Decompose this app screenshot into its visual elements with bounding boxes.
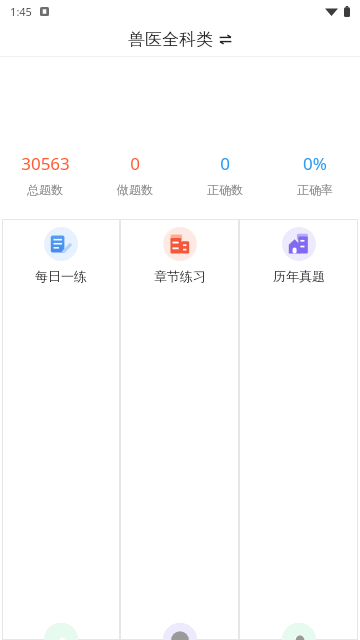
- staticText: 1:45: [10, 4, 32, 19]
- staticText: 30563: [21, 152, 70, 175]
- button[interactable]: 兽医全科类: [120, 25, 240, 54]
- button[interactable]: 历年真题: [239, 219, 358, 291]
- staticText: 正确数: [207, 182, 243, 197]
- staticText: 兽医全科类: [128, 29, 213, 50]
- staticText: 每日一练: [35, 268, 87, 284]
- staticText: 历年真题: [273, 268, 325, 284]
- staticText: 总题数: [27, 182, 63, 197]
- button[interactable]: 每日一练: [2, 219, 120, 291]
- staticText: 做题数: [117, 182, 153, 197]
- staticText: 0%: [303, 152, 327, 175]
- staticText: 0: [130, 152, 140, 175]
- button[interactable]: 0: [90, 152, 180, 197]
- button[interactable]: 0%: [270, 152, 360, 197]
- button[interactable]: 30563: [0, 152, 90, 197]
- staticText: 章节练习: [154, 268, 206, 284]
- staticText: 0: [220, 152, 230, 175]
- button[interactable]: 0: [180, 152, 270, 197]
- staticText: 正确率: [297, 182, 333, 197]
- button[interactable]: 章节练习: [120, 219, 239, 291]
